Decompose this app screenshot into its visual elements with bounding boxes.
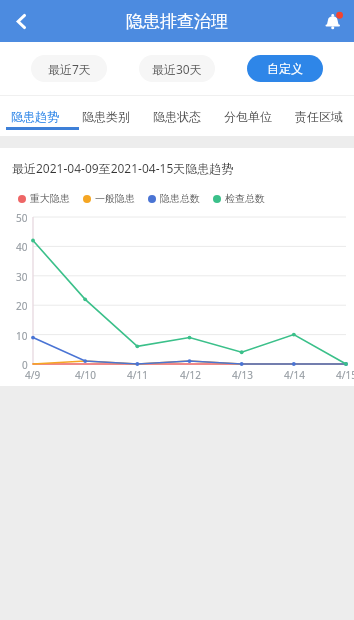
staticText: 0 xyxy=(22,358,28,372)
staticText: 10 xyxy=(16,329,28,343)
staticText: 隐患类别 xyxy=(82,109,130,124)
staticText: 分包单位 xyxy=(224,109,272,124)
staticText: 隐患总数 xyxy=(160,192,200,205)
button[interactable]: 分包单位 xyxy=(212,96,283,136)
button[interactable]: 隐患趋势 xyxy=(0,96,70,136)
button[interactable]: 最近30天 xyxy=(139,55,215,82)
staticText: 最近7天 xyxy=(48,61,91,77)
staticText: 4/13 xyxy=(232,368,253,382)
staticText: 30 xyxy=(16,270,28,284)
button[interactable]: 责任区域 xyxy=(283,96,354,136)
staticText: 自定义 xyxy=(267,61,303,76)
staticText: 4/12 xyxy=(180,368,201,382)
staticText: 隐患趋势 xyxy=(11,109,59,124)
staticText: 重大隐患 xyxy=(30,192,70,205)
staticText: 检查总数 xyxy=(225,192,265,205)
staticText: 4/9 xyxy=(25,368,41,382)
staticText: 隐患状态 xyxy=(153,109,201,124)
staticText: 50 xyxy=(16,211,28,225)
button[interactable]: 隐患状态 xyxy=(141,96,212,136)
button[interactable]: 最近7天 xyxy=(31,55,107,82)
staticText: 4/10 xyxy=(75,368,96,382)
staticText: 责任区域 xyxy=(295,109,343,124)
button[interactable]: Back xyxy=(0,0,42,42)
staticText: 4/11 xyxy=(127,368,148,382)
staticText: 40 xyxy=(16,240,28,254)
staticText: 最近2021-04-09至2021-04-15天隐患趋势 xyxy=(12,160,234,176)
staticText: 4/14 xyxy=(284,368,305,382)
staticText: 隐患排查治理 xyxy=(126,11,228,32)
staticText: 一般隐患 xyxy=(95,192,135,205)
button[interactable]: 自定义 xyxy=(247,55,323,82)
button[interactable]: Notifications xyxy=(312,0,354,42)
button[interactable]: 隐患类别 xyxy=(70,96,141,136)
staticText: 20 xyxy=(16,299,28,313)
staticText: 最近30天 xyxy=(152,61,202,77)
staticText: 4/15 xyxy=(336,368,354,382)
